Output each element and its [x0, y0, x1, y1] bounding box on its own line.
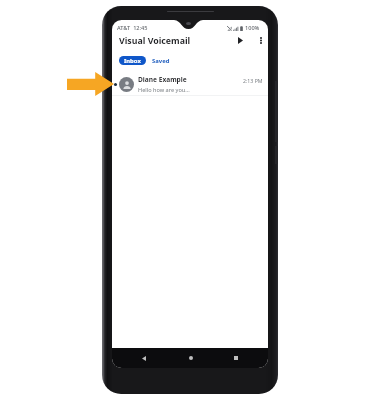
staticText: Visual Voicemail: [119, 35, 191, 47]
staticText: 2:13 PM: [243, 77, 263, 84]
button[interactable]: Recent apps: [229, 351, 243, 365]
button[interactable]: More options: [254, 34, 267, 47]
button[interactable]: Play all voicemails: [234, 34, 247, 47]
button[interactable]: Diane Example: [112, 71, 268, 96]
staticText: 100%: [245, 24, 260, 32]
button[interactable]: Saved: [149, 56, 173, 65]
staticText: Hello how are you...: [138, 86, 190, 94]
button[interactable]: Back: [137, 351, 151, 365]
button[interactable]: Home: [184, 351, 198, 365]
staticText: AT&T 12:45: [117, 24, 148, 32]
staticText: Diane Example: [138, 75, 187, 84]
staticText: Saved: [152, 57, 170, 65]
staticText: Inbox: [124, 57, 141, 65]
button[interactable]: Inbox: [119, 56, 146, 65]
